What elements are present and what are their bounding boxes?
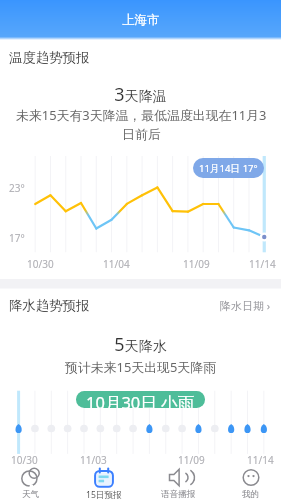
staticText: 10月30日 小雨 bbox=[86, 391, 195, 408]
staticText: 3天降温 bbox=[114, 82, 167, 107]
staticText: 未来15天有3天降温，最低温度出现在11月3 bbox=[16, 106, 267, 124]
staticText: 预计未来15天出现5天降雨 bbox=[65, 358, 217, 376]
staticText: 10/30 bbox=[11, 453, 38, 467]
staticText: 11/09 bbox=[178, 453, 205, 467]
button[interactable]: 11月14日 17° bbox=[193, 158, 264, 178]
staticText: 降水趋势预报 bbox=[9, 297, 90, 314]
staticText: 上海市 bbox=[122, 12, 160, 28]
button[interactable]: 我的 bbox=[231, 466, 271, 500]
staticText: 11月14日 17° bbox=[199, 162, 258, 175]
staticText: 11/14 bbox=[247, 453, 274, 467]
staticText: 降水日期 › bbox=[220, 298, 271, 313]
staticText: 11/03 bbox=[80, 453, 107, 467]
button[interactable]: 降水日期 › bbox=[210, 294, 271, 316]
staticText: 11/14 bbox=[249, 257, 276, 271]
button[interactable]: 15日预报 bbox=[84, 466, 124, 500]
staticText: 5天降水 bbox=[114, 332, 167, 357]
staticText: 17° bbox=[9, 231, 25, 245]
staticText: 11/09 bbox=[183, 257, 210, 271]
staticText: 10/30 bbox=[27, 257, 54, 271]
staticText: 天气 bbox=[22, 489, 40, 500]
staticText: 11/04 bbox=[103, 257, 130, 271]
staticText: 语音播报 bbox=[161, 489, 196, 500]
staticText: 我的 bbox=[242, 489, 260, 500]
staticText: 温度趋势预报 bbox=[9, 49, 90, 66]
staticText: 日前后 bbox=[122, 127, 161, 143]
button[interactable]: 语音播报 bbox=[158, 466, 198, 500]
button[interactable]: 天气 bbox=[11, 466, 51, 500]
staticText: 15日预报 bbox=[86, 489, 122, 500]
button[interactable]: 10月30日 小雨 bbox=[76, 391, 205, 408]
staticText: 23° bbox=[9, 181, 25, 195]
